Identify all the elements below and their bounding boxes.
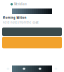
button[interactable]: Profile (48, 65, 64, 72)
button[interactable]: Saved (32, 65, 48, 72)
staticText: Field notes from the coast (2, 21, 38, 24)
button[interactable]: Browse (16, 65, 32, 72)
button[interactable]: Home (0, 65, 16, 72)
staticText: Meridian (14, 2, 27, 6)
staticText: Morning Edition (2, 16, 26, 19)
